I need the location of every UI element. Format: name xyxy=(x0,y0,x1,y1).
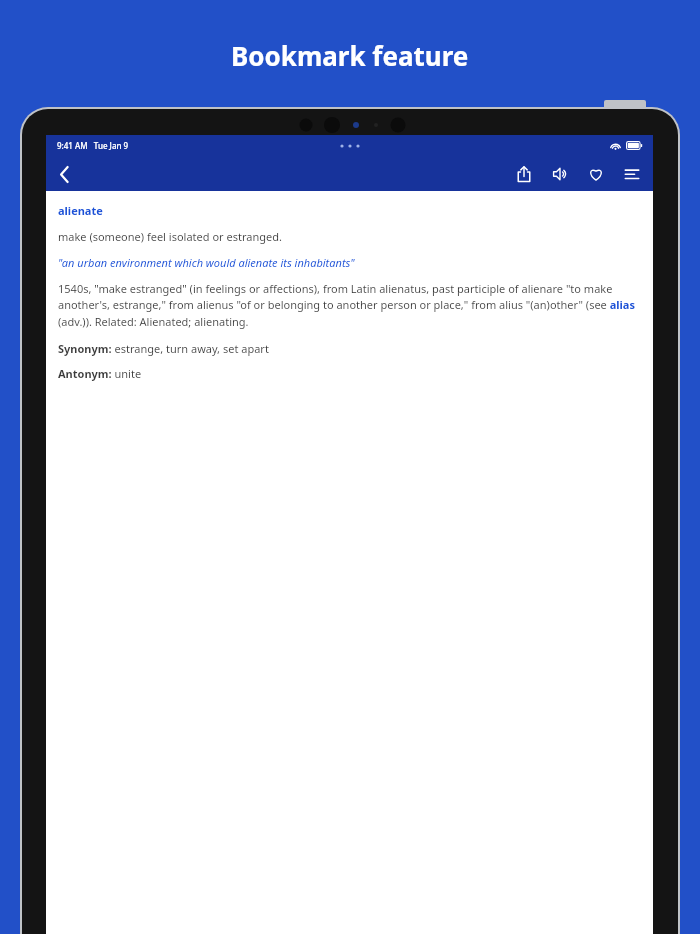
button[interactable]: alienate xyxy=(58,203,103,218)
button[interactable]: Bookmark xyxy=(583,161,609,187)
staticText: make (someone) feel isolated or estrange… xyxy=(58,229,282,244)
staticText: "an urban environment which would aliena… xyxy=(58,255,355,270)
button[interactable]: Pronounce xyxy=(547,161,573,187)
button[interactable]: Menu xyxy=(619,161,645,187)
staticText: Antonym: unite xyxy=(58,366,142,381)
staticText: Bookmark feature xyxy=(231,38,469,73)
button[interactable]: Back xyxy=(50,160,78,188)
button[interactable]: Share xyxy=(511,161,537,187)
staticText: 9:41 AM Tue Jan 9 xyxy=(57,140,129,151)
staticText: 1540s, "make estranged" (in feelings or … xyxy=(58,281,641,330)
staticText: Synonym: estrange, turn away, set apart xyxy=(58,341,269,356)
